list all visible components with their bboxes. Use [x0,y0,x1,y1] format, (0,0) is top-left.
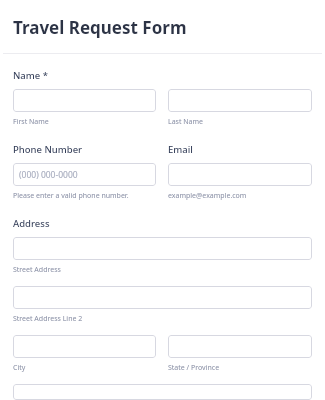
staticText: Phone Number [13,143,83,156]
staticText: Please enter a valid phone number. [13,191,129,201]
button[interactable]: (000) 000-0000 [13,163,156,186]
staticText: State / Province [168,363,220,373]
button[interactable] [168,89,312,112]
staticText: example@example.com [168,191,247,201]
staticText: Address [13,217,50,230]
staticText: Street Address Line 2 [13,314,83,324]
staticText: Name * [13,69,48,82]
staticText: First Name [13,117,49,127]
button[interactable] [13,384,312,400]
staticText: City [13,363,26,373]
button[interactable] [13,237,312,260]
button[interactable] [13,335,156,358]
button[interactable] [168,335,312,358]
staticText: Last Name [168,117,204,127]
staticText: (000) 000-0000 [19,169,78,181]
button[interactable] [168,163,312,186]
button[interactable] [13,89,156,112]
staticText: Travel Request Form [13,16,187,39]
staticText: Street Address [13,265,61,275]
button[interactable] [13,286,312,309]
staticText: Email [168,143,193,156]
